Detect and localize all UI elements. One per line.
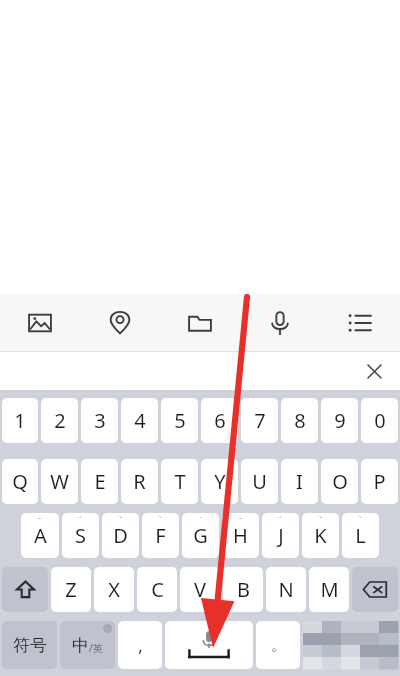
button[interactable]: , (118, 621, 162, 669)
button[interactable]: B (223, 567, 263, 612)
staticText: J (278, 522, 284, 549)
button[interactable]: ˇ (302, 513, 339, 558)
button[interactable]: Y (201, 459, 238, 504)
button[interactable]: 6 (201, 398, 238, 443)
button[interactable]: 1 (2, 398, 38, 443)
button[interactable]: 8 (281, 398, 318, 443)
staticText: T (174, 468, 186, 495)
button[interactable]: 符号 (2, 621, 57, 669)
staticText: B (237, 576, 250, 603)
staticText: U (252, 468, 267, 495)
button[interactable]: I (281, 459, 318, 504)
button[interactable]: Q (2, 459, 38, 504)
button[interactable]: W (41, 459, 78, 504)
button[interactable]: 9 (321, 398, 358, 443)
staticText: R (133, 468, 146, 495)
button[interactable]: Z (51, 567, 91, 612)
button[interactable]: N (266, 567, 306, 612)
button[interactable]: 4 (121, 398, 158, 443)
staticText: S (75, 522, 86, 549)
button[interactable]: Space (165, 621, 253, 669)
staticText: P (373, 468, 386, 495)
staticText: ˋ (159, 515, 162, 526)
button[interactable]: V (180, 567, 220, 612)
button[interactable]: Backspace (352, 567, 398, 612)
staticText: K (314, 522, 327, 549)
staticText: Y (214, 468, 226, 495)
button[interactable]: ˋ (142, 513, 179, 558)
staticText: Q (12, 468, 28, 495)
button[interactable]: E (81, 459, 118, 504)
button[interactable]: 7 (241, 398, 278, 443)
staticText: 2 (54, 407, 66, 434)
staticText: ˙ (200, 515, 202, 526)
button[interactable]: U (241, 459, 278, 504)
button[interactable]: Image (0, 294, 80, 351)
button[interactable]: ˇ (102, 513, 139, 558)
button[interactable]: Location (80, 294, 160, 351)
staticText: 3 (94, 407, 106, 434)
button[interactable]: 5 (161, 398, 198, 443)
staticText: 6 (214, 407, 226, 434)
staticText: 0 (374, 407, 386, 434)
staticText: 中 (72, 635, 89, 656)
staticText: W (50, 468, 69, 495)
button[interactable]: C (137, 567, 177, 612)
staticText: A (34, 522, 47, 549)
staticText: G (193, 522, 208, 549)
staticText: D (113, 522, 128, 549)
staticText: 4 (134, 407, 146, 434)
button[interactable]: M (309, 567, 349, 612)
staticText: E (94, 468, 106, 495)
staticText: , (138, 634, 143, 657)
button[interactable]: R (121, 459, 158, 504)
staticText: /英 (89, 641, 103, 655)
button[interactable]: 0 (361, 398, 398, 443)
staticText: C (151, 576, 164, 603)
staticText: ˊ (279, 515, 282, 526)
staticText: 9 (334, 407, 346, 434)
staticText: ˊ (79, 515, 82, 526)
button[interactable]: ˙ (182, 513, 219, 558)
staticText: X (108, 576, 120, 603)
button[interactable]: Shift (2, 567, 48, 612)
button[interactable]: ˊ (62, 513, 99, 558)
staticText: ˇ (319, 515, 323, 526)
staticText: I (296, 468, 303, 495)
button[interactable]: ˉ (222, 513, 259, 558)
staticText: N (278, 576, 294, 603)
button[interactable]: O (321, 459, 358, 504)
staticText: 。 (271, 636, 286, 655)
button[interactable]: T (161, 459, 198, 504)
staticText: H (233, 522, 248, 549)
staticText: Z (65, 576, 77, 603)
staticText: ˉ (239, 515, 243, 526)
button[interactable]: 中 (60, 621, 115, 669)
staticText: L (355, 522, 366, 549)
staticText: V (194, 576, 206, 603)
staticText: F (155, 522, 166, 549)
button[interactable]: Close (358, 355, 390, 387)
button[interactable]: ˉ (21, 513, 59, 558)
button[interactable]: Folder (160, 294, 240, 351)
button[interactable]: P (361, 459, 398, 504)
button[interactable]: List (320, 294, 400, 351)
button[interactable]: ˊ (262, 513, 299, 558)
staticText: 符号 (13, 635, 47, 656)
button[interactable]: X (94, 567, 134, 612)
button[interactable]: Voice (240, 294, 320, 351)
staticText: 1 (14, 407, 26, 434)
button[interactable]: 2 (41, 398, 78, 443)
staticText: ˉ (38, 515, 42, 526)
staticText: 7 (254, 407, 266, 434)
button[interactable]: ˋ (342, 513, 379, 558)
staticText: ˇ (119, 515, 123, 526)
button[interactable]: 3 (81, 398, 118, 443)
staticText: 8 (294, 407, 306, 434)
button[interactable]: 。 (256, 621, 300, 669)
staticText: M (320, 576, 339, 603)
staticText: O (332, 468, 348, 495)
staticText: ˋ (359, 515, 362, 526)
staticText: 5 (174, 407, 186, 434)
